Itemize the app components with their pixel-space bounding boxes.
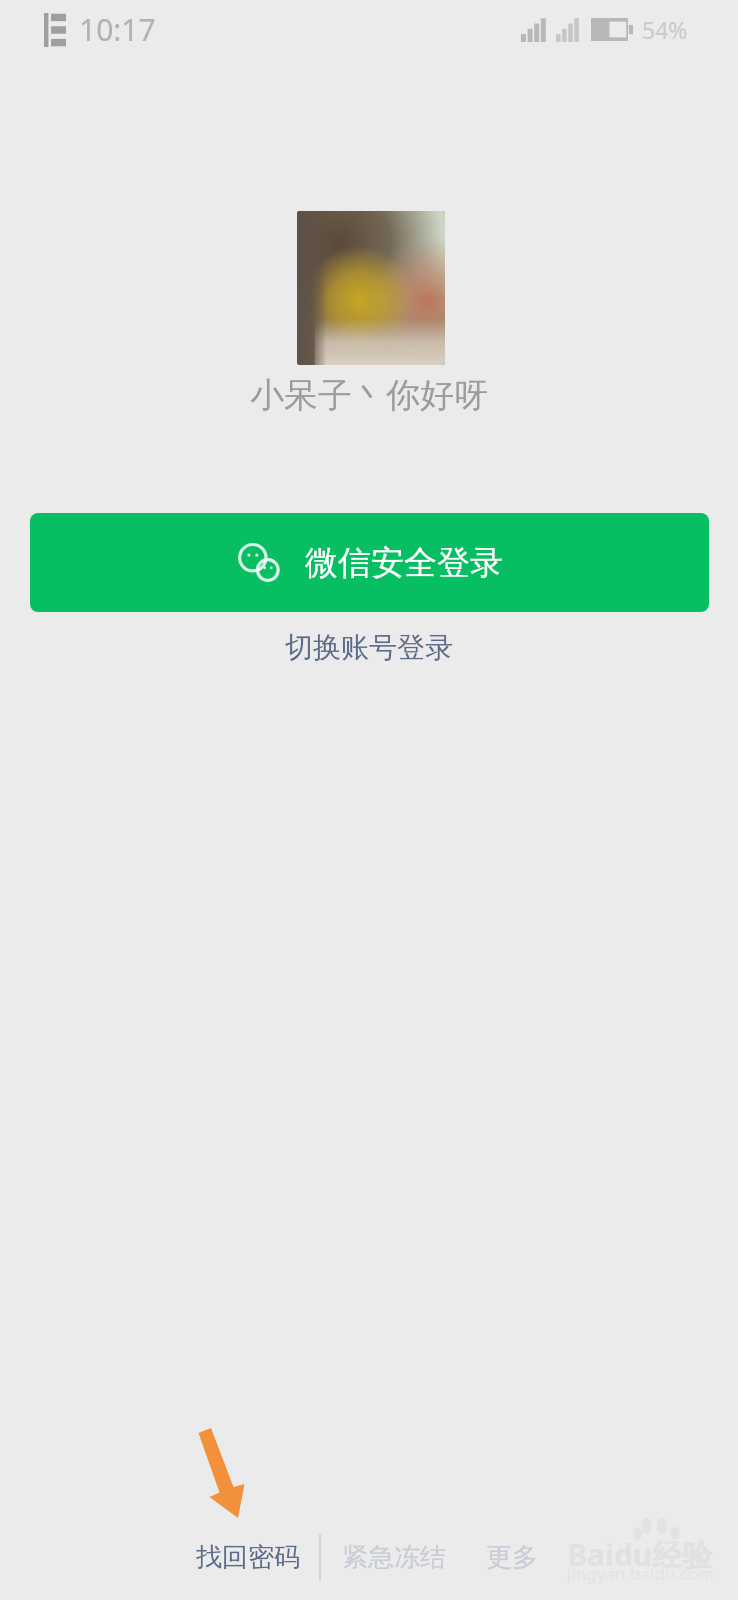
staticText: 找回密码 [196, 1541, 300, 1574]
other: WeChat [237, 541, 281, 585]
staticText: 切换账号登录 [285, 630, 453, 665]
staticText: Baidu经验 [567, 1534, 713, 1575]
staticText: 小呆子丶你好呀 [250, 374, 488, 417]
button[interactable]: 找回密码 [196, 1541, 300, 1574]
other: Annotation arrow [0, 0, 738, 1600]
staticText: 10:17 [79, 9, 156, 50]
staticText: 微信安全登录 [305, 542, 503, 584]
staticText: jingyan.baidu.com [567, 1562, 715, 1585]
button[interactable]: Profile photo [297, 211, 445, 365]
staticText: 更多 [486, 1541, 538, 1574]
button[interactable]: 更多 [486, 1541, 538, 1574]
button[interactable]: WeChat [30, 513, 709, 612]
staticText: 54% [642, 14, 688, 45]
staticText: 紧急冻结 [342, 1541, 446, 1574]
button[interactable]: 紧急冻结 [342, 1541, 446, 1574]
button[interactable]: 切换账号登录 [271, 622, 467, 673]
